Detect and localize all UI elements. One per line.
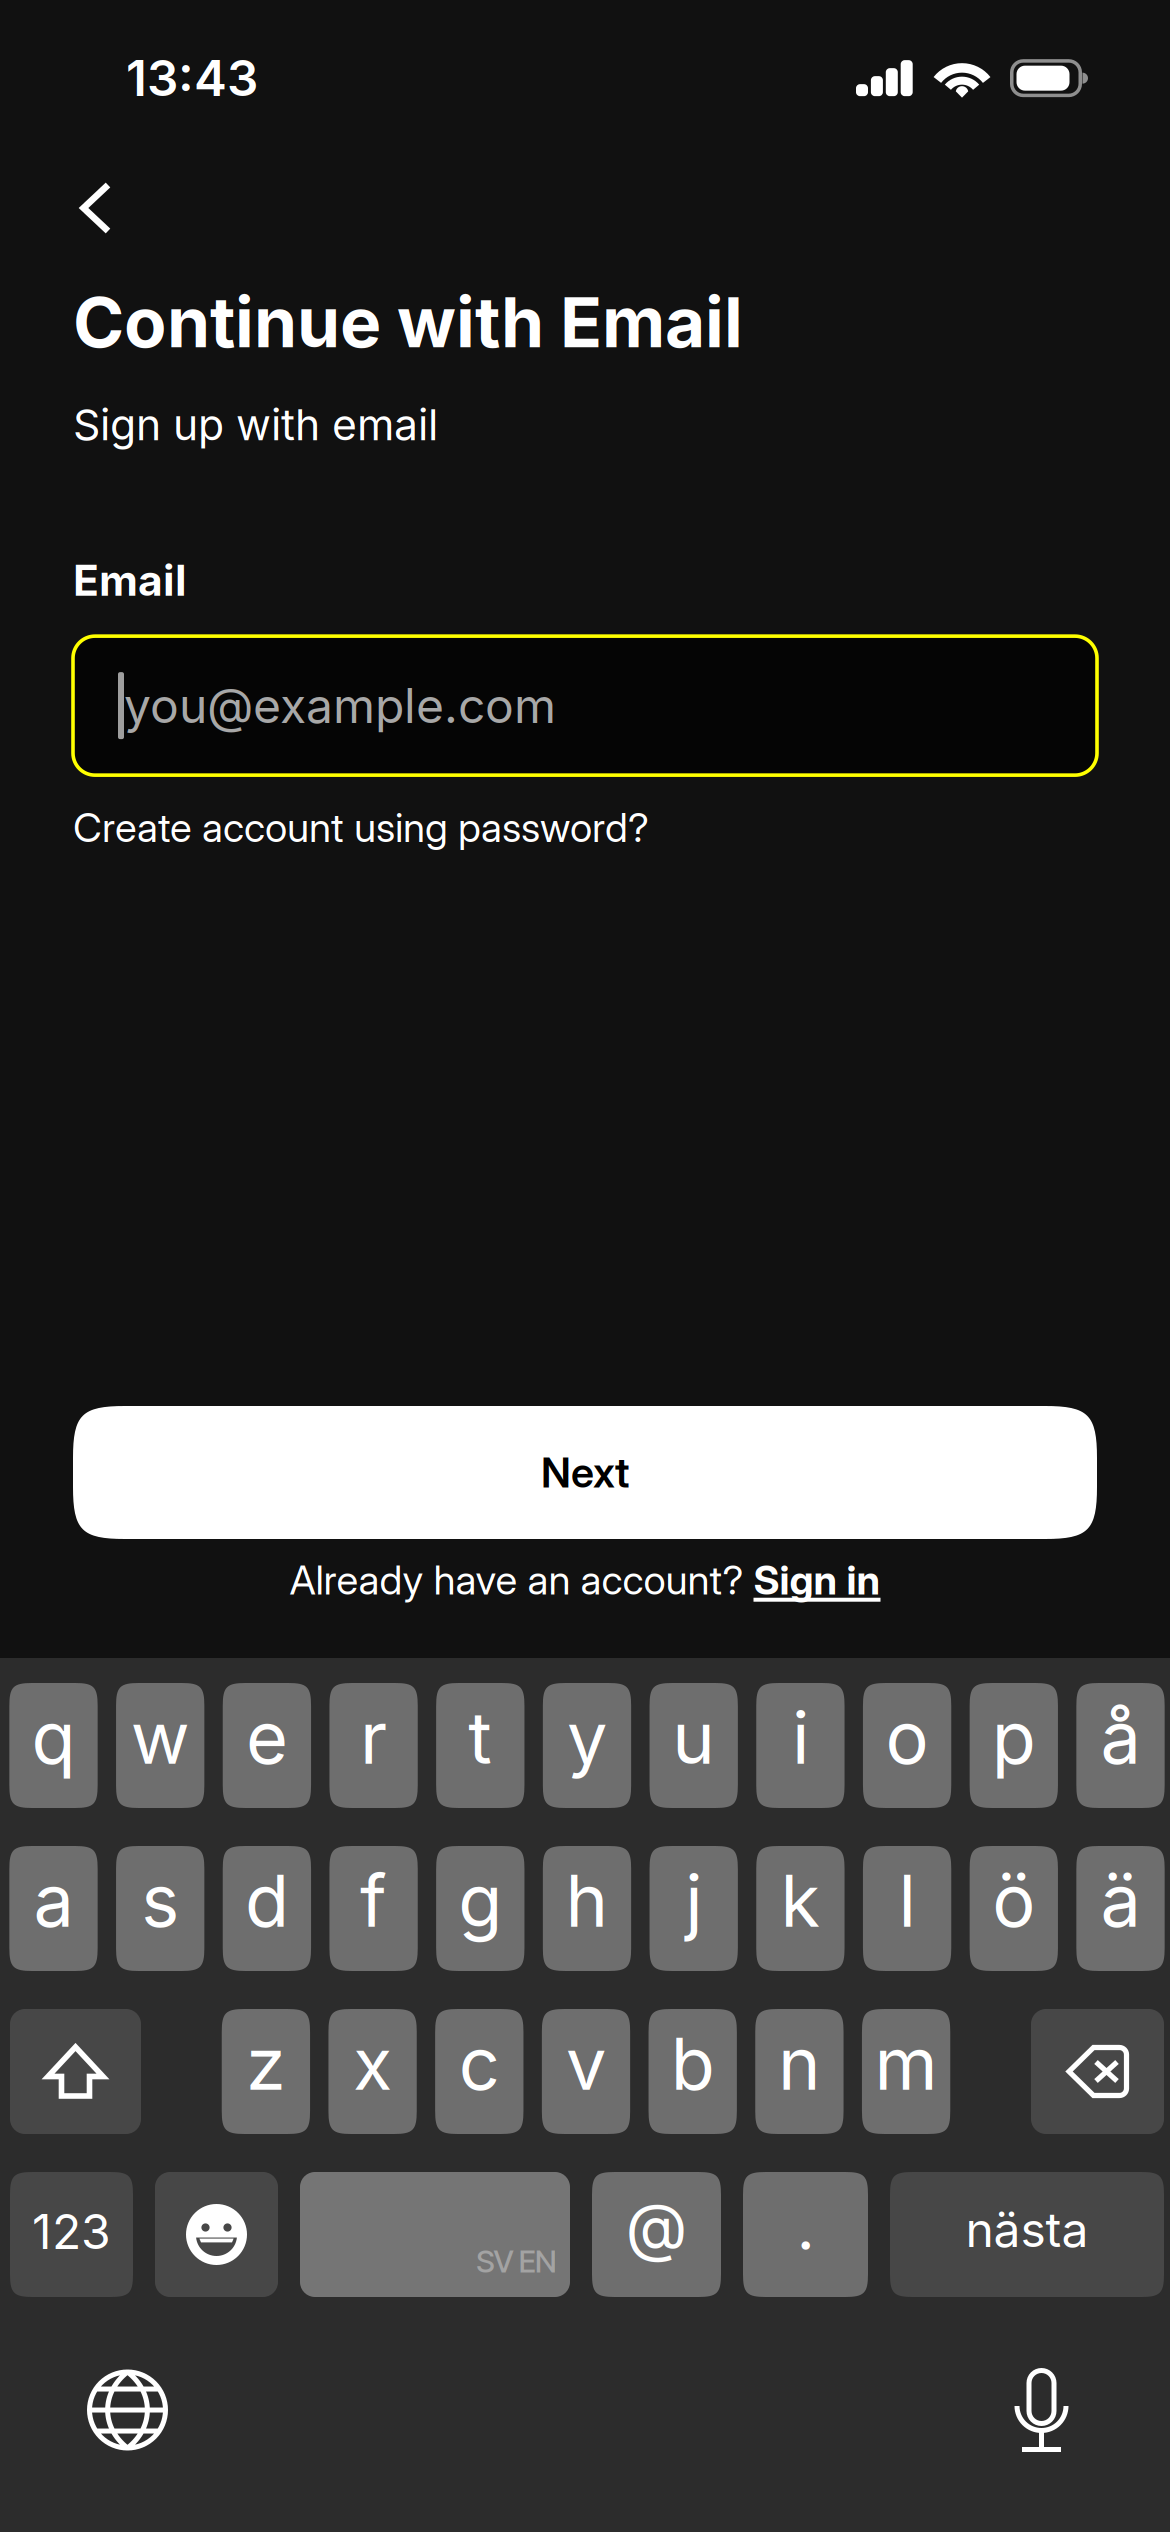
- staticText: nästa: [965, 2200, 1088, 2259]
- staticText: SV EN: [476, 2243, 557, 2280]
- button[interactable]: b: [648, 2009, 737, 2134]
- staticText: 123: [32, 2202, 111, 2261]
- button[interactable]: o: [863, 1683, 951, 1808]
- staticText: å: [1100, 1694, 1140, 1781]
- staticText: t: [468, 1694, 492, 1781]
- staticText: a: [33, 1857, 73, 1944]
- staticText: Continue with Email: [73, 280, 743, 364]
- staticText: u: [672, 1694, 715, 1781]
- button[interactable]: n: [755, 2009, 843, 2134]
- button[interactable]: c: [435, 2009, 523, 2134]
- button[interactable]: s: [116, 1846, 204, 1971]
- staticText: Next: [541, 1447, 629, 1497]
- staticText: p: [992, 1694, 1036, 1781]
- button[interactable]: ö: [970, 1846, 1058, 1971]
- staticText: k: [780, 1857, 820, 1944]
- button[interactable]: w: [116, 1683, 204, 1808]
- button[interactable]: y: [543, 1683, 631, 1808]
- staticText: ä: [1100, 1857, 1140, 1944]
- staticText: m: [875, 2020, 938, 2107]
- button[interactable]: i: [756, 1683, 845, 1808]
- staticText: s: [141, 1857, 179, 1944]
- button[interactable]: Next keyboard: [87, 2369, 168, 2450]
- staticText: r: [360, 1694, 387, 1781]
- button[interactable]: m: [862, 2009, 950, 2134]
- button[interactable]: p: [970, 1683, 1058, 1808]
- staticText: Email: [73, 554, 187, 606]
- button[interactable]: a: [9, 1846, 98, 1971]
- staticText: Already have an account?: [289, 1556, 753, 1604]
- staticText: h: [565, 1857, 608, 1944]
- button[interactable]: l: [863, 1846, 951, 1971]
- staticText: x: [353, 2020, 392, 2107]
- staticText: 13:43: [126, 48, 258, 108]
- staticText: Sign up with email: [73, 399, 438, 450]
- staticText: d: [245, 1857, 289, 1944]
- button[interactable]: Shift: [10, 2009, 141, 2134]
- button[interactable]: j: [650, 1846, 738, 1971]
- button[interactable]: Next: [73, 1406, 1097, 1539]
- staticText: n: [778, 2020, 821, 2107]
- button[interactable]: r: [329, 1683, 418, 1808]
- button[interactable]: ä: [1076, 1846, 1165, 1971]
- staticText: you@example.com: [124, 677, 556, 735]
- button[interactable]: d: [223, 1846, 311, 1971]
- staticText: f: [360, 1857, 387, 1944]
- button[interactable]: u: [650, 1683, 738, 1808]
- staticText: v: [566, 2020, 606, 2107]
- staticText: q: [31, 1694, 75, 1781]
- button[interactable]: Back: [0, 158, 146, 258]
- button[interactable]: Already have an account?: [73, 1557, 1097, 1603]
- button[interactable]: Delete: [1031, 2009, 1164, 2134]
- staticText: Create account using password?: [73, 803, 649, 851]
- button[interactable]: nästa: [890, 2172, 1164, 2297]
- button[interactable]: h: [543, 1846, 631, 1971]
- staticText: g: [458, 1857, 502, 1944]
- button[interactable]: Dictation: [1014, 2368, 1069, 2452]
- button[interactable]: 123: [10, 2172, 133, 2297]
- staticText: Sign in: [753, 1556, 880, 1604]
- button[interactable]: Emoji: [155, 2172, 278, 2297]
- button[interactable]: z: [222, 2009, 310, 2134]
- staticText: .: [796, 2188, 814, 2265]
- button[interactable]: .: [743, 2172, 868, 2297]
- button[interactable]: @: [592, 2172, 721, 2297]
- staticText: b: [671, 2020, 715, 2107]
- staticText: e: [246, 1694, 288, 1781]
- button[interactable]: q: [9, 1683, 98, 1808]
- button[interactable]: t: [436, 1683, 524, 1808]
- staticText: y: [567, 1694, 607, 1781]
- staticText: ö: [992, 1857, 1035, 1944]
- staticText: w: [131, 1694, 190, 1781]
- button[interactable]: Space: [300, 2172, 570, 2297]
- button[interactable]: x: [328, 2009, 417, 2134]
- button[interactable]: å: [1076, 1683, 1165, 1808]
- button[interactable]: f: [329, 1846, 418, 1971]
- staticText: @: [625, 2188, 687, 2265]
- staticText: c: [459, 2020, 500, 2107]
- staticText: z: [246, 2020, 286, 2107]
- staticText: o: [886, 1694, 929, 1781]
- staticText: l: [899, 1857, 916, 1944]
- button[interactable]: k: [756, 1846, 845, 1971]
- staticText: i: [792, 1694, 809, 1781]
- button[interactable]: e: [223, 1683, 311, 1808]
- button[interactable]: v: [542, 2009, 630, 2134]
- button[interactable]: g: [436, 1846, 524, 1971]
- staticText: j: [685, 1857, 702, 1944]
